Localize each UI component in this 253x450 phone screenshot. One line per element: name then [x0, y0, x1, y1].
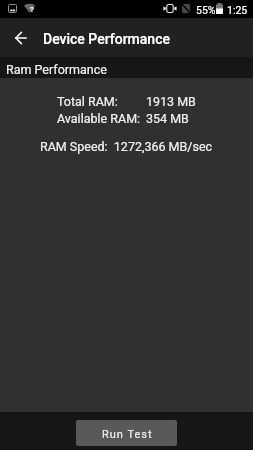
- staticText: 1913 MB: [146, 94, 196, 109]
- staticText: RAM Speed: 1272,366 MB/sec: [40, 139, 213, 154]
- staticText: 354 MB: [146, 111, 189, 126]
- staticText: 1:25: [227, 4, 248, 16]
- staticText: ?: [30, 5, 34, 14]
- button[interactable]: Back: [6, 18, 35, 57]
- staticText: Available RAM:: [57, 111, 141, 126]
- staticText: Ram Performance: [6, 62, 107, 77]
- staticText: Run Test: [102, 428, 153, 441]
- staticText: Total RAM:: [57, 94, 118, 109]
- button[interactable]: Run Test: [76, 420, 177, 446]
- staticText: 55%: [196, 4, 216, 16]
- staticText: Device Performance: [43, 31, 170, 47]
